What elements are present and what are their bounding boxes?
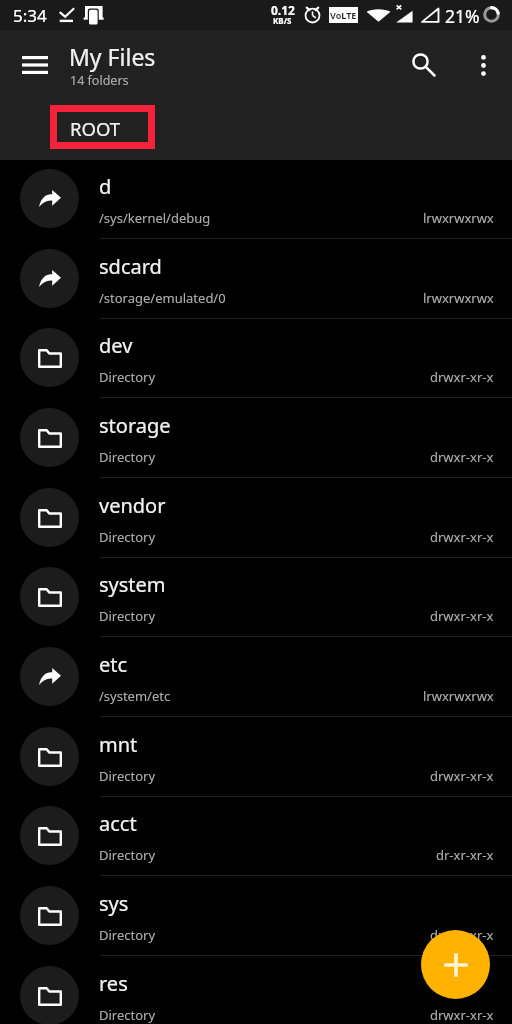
button[interactable]: d	[0, 159, 512, 239]
staticText: /sys/kernel/debug	[99, 209, 211, 227]
staticText: mnt	[99, 731, 138, 758]
staticText: acct	[99, 810, 137, 837]
staticText: drwxr-xr-x	[430, 926, 494, 944]
button[interactable]: res	[0, 956, 512, 1024]
staticText: res	[99, 970, 128, 997]
button[interactable]: Search	[396, 35, 454, 93]
button[interactable]: etc	[0, 637, 512, 717]
staticText: My Files	[69, 41, 156, 72]
staticText: dr-xr-xr-x	[436, 846, 494, 864]
button[interactable]: More options	[454, 35, 512, 93]
staticText: ROOT	[70, 116, 121, 141]
staticText: Directory	[99, 368, 156, 386]
button[interactable]: storage	[0, 398, 512, 478]
button[interactable]: sys	[0, 876, 512, 956]
staticText: Directory	[99, 767, 156, 785]
button[interactable]: sdcard	[0, 239, 512, 319]
staticText: drwxr-xr-x	[430, 1006, 494, 1024]
staticText: drwxr-xr-x	[430, 448, 494, 466]
staticText: Directory	[99, 1006, 156, 1024]
staticText: dev	[99, 332, 133, 359]
button[interactable]: mnt	[0, 717, 512, 797]
button[interactable]: Add	[421, 930, 490, 999]
staticText: lrwxrwxrwx	[423, 209, 494, 227]
staticText: 0.12	[271, 2, 295, 18]
staticText: VoLTE	[330, 9, 357, 21]
button[interactable]: ROOT	[50, 105, 154, 149]
staticText: Directory	[99, 448, 156, 466]
staticText: storage	[99, 412, 171, 439]
staticText: sdcard	[99, 253, 162, 280]
button[interactable]: vendor	[0, 478, 512, 558]
staticText: /system/etc	[99, 687, 171, 705]
staticText: vendor	[99, 492, 166, 519]
button[interactable]: Navigation menu	[0, 30, 70, 98]
staticText: Directory	[99, 528, 156, 546]
staticText: 21%	[445, 4, 480, 28]
staticText: Directory	[99, 607, 156, 625]
button[interactable]: dev	[0, 318, 512, 398]
staticText: d	[99, 173, 112, 200]
staticText: Directory	[99, 926, 156, 944]
staticText: lrwxrwxrwx	[423, 289, 494, 307]
staticText: system	[99, 571, 166, 598]
staticText: drwxr-xr-x	[430, 368, 494, 386]
staticText: drwxr-xr-x	[430, 767, 494, 785]
staticText: drwxr-xr-x	[430, 528, 494, 546]
staticText: KB/S	[273, 15, 292, 26]
staticText: lrwxrwxrwx	[423, 687, 494, 705]
staticText: 14 folders	[70, 72, 129, 89]
staticText: drwxr-xr-x	[430, 607, 494, 625]
button[interactable]: acct	[0, 796, 512, 876]
staticText: 5:34	[13, 4, 47, 27]
staticText: etc	[99, 651, 128, 678]
button[interactable]: system	[0, 557, 512, 637]
staticText: /storage/emulated/0	[99, 289, 226, 307]
staticText: sys	[99, 890, 129, 917]
staticText: Directory	[99, 846, 156, 864]
